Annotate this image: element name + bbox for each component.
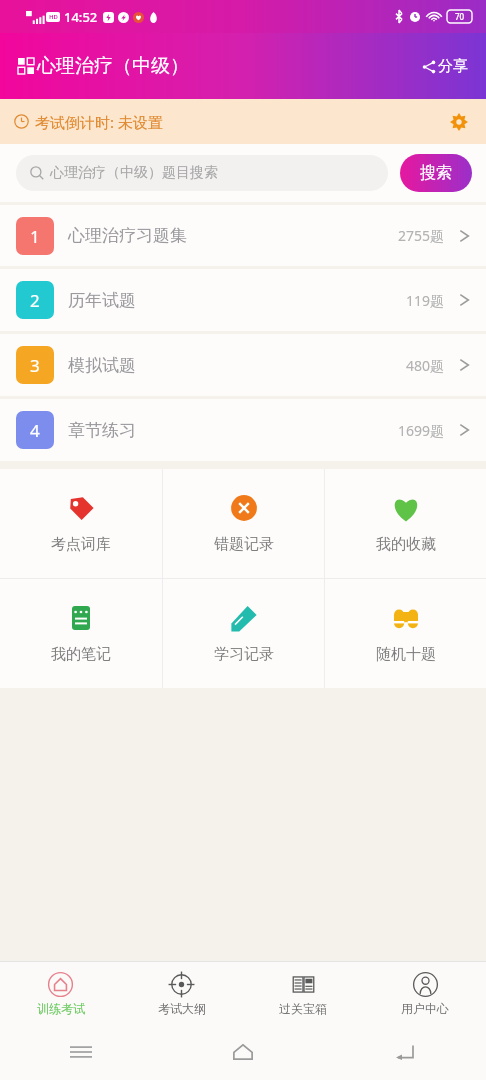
staticText: 3 bbox=[30, 354, 40, 377]
staticText: 4 bbox=[30, 419, 40, 442]
button[interactable]: 随机十题 bbox=[325, 579, 486, 688]
staticText: 考试倒计时: 未设置 bbox=[35, 112, 163, 132]
staticText: HD bbox=[49, 13, 58, 21]
button[interactable]: 我的笔记 bbox=[0, 579, 162, 688]
staticText: 心理治疗习题集 bbox=[68, 225, 187, 246]
staticText: 学习记录 bbox=[214, 645, 274, 664]
staticText: 模拟试题 bbox=[68, 355, 136, 376]
button[interactable]: 考点词库 bbox=[0, 469, 162, 578]
button[interactable]: 考试大纲 bbox=[121, 962, 242, 1024]
button[interactable]: Recents bbox=[61, 1032, 101, 1072]
button[interactable]: Home bbox=[223, 1032, 263, 1072]
button[interactable]: 3 bbox=[0, 334, 486, 396]
button[interactable]: 2 bbox=[0, 269, 486, 331]
staticText: 119题 bbox=[406, 291, 445, 310]
staticText: 我的收藏 bbox=[376, 535, 436, 554]
button[interactable]: 过关宝箱 bbox=[242, 962, 364, 1024]
staticText: 2755题 bbox=[398, 226, 445, 245]
staticText: 错题记录 bbox=[214, 535, 274, 554]
button[interactable]: 设置倒计时 bbox=[446, 109, 472, 135]
staticText: 1 bbox=[30, 225, 40, 248]
staticText: 14:52 bbox=[64, 8, 98, 26]
button[interactable]: 考试倒计时: 未设置 bbox=[0, 99, 486, 144]
staticText: 历年试题 bbox=[68, 290, 136, 311]
button[interactable]: 训练考试 bbox=[0, 962, 121, 1024]
staticText: 1699题 bbox=[398, 421, 445, 440]
staticText: 480题 bbox=[406, 356, 445, 375]
staticText: 70 bbox=[455, 11, 465, 22]
staticText: 我的笔记 bbox=[51, 645, 111, 664]
button[interactable]: 分享 bbox=[418, 51, 472, 82]
button[interactable]: 1 bbox=[0, 205, 486, 266]
staticText: 搜索 bbox=[420, 163, 452, 183]
staticText: 分享 bbox=[438, 57, 468, 76]
button[interactable]: Back bbox=[385, 1032, 425, 1072]
staticText: 随机十题 bbox=[376, 645, 436, 664]
staticText: 过关宝箱 bbox=[279, 1001, 327, 1016]
button[interactable]: 我的收藏 bbox=[325, 469, 486, 578]
staticText: 章节练习 bbox=[68, 420, 136, 441]
staticText: 心理治疗（中级）题目搜索 bbox=[50, 164, 218, 182]
button[interactable]: 搜索 bbox=[400, 154, 472, 192]
staticText: 心理治疗（中级） bbox=[37, 54, 189, 78]
button[interactable]: 心理治疗（中级）题目搜索 bbox=[16, 155, 388, 191]
staticText: 考试大纲 bbox=[158, 1001, 206, 1016]
staticText: 用户中心 bbox=[401, 1001, 449, 1016]
staticText: 2 bbox=[30, 289, 40, 312]
button[interactable]: 用户中心 bbox=[364, 962, 486, 1024]
button[interactable]: 学习记录 bbox=[163, 579, 324, 688]
button[interactable]: 错题记录 bbox=[163, 469, 324, 578]
staticText: 训练考试 bbox=[37, 1001, 85, 1016]
button[interactable]: 4 bbox=[0, 399, 486, 461]
staticText: 考点词库 bbox=[51, 535, 111, 554]
